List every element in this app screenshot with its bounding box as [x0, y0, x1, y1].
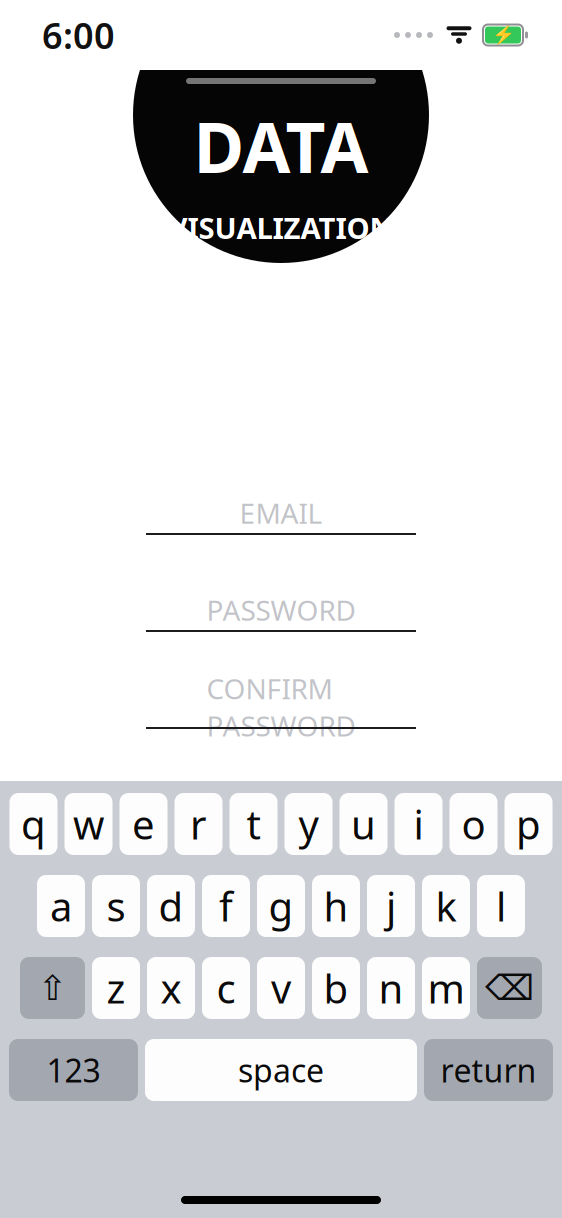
staticText: ⌫ [485, 968, 534, 1008]
button[interactable]: space [145, 1039, 417, 1101]
staticText: VISUALIZATION [168, 208, 393, 247]
button[interactable]: u [339, 793, 387, 855]
staticText: h [323, 879, 348, 932]
button[interactable]: w [64, 793, 112, 855]
staticText: ⚡ [491, 24, 514, 46]
button[interactable]: s [92, 875, 140, 937]
staticText: l [496, 879, 506, 932]
button[interactable]: b [312, 957, 360, 1019]
staticText: j [386, 879, 396, 932]
button[interactable]: n [367, 957, 415, 1019]
button[interactable]: m [422, 957, 470, 1019]
staticText: x [160, 961, 181, 1014]
button[interactable]: y [284, 793, 332, 855]
button[interactable]: v [257, 957, 305, 1019]
staticText: q [21, 797, 46, 850]
staticText: 6:00 [42, 11, 115, 59]
staticText: e [132, 797, 155, 850]
button[interactable]: d [147, 875, 195, 937]
staticText: t [246, 797, 260, 850]
button[interactable]: f [202, 875, 250, 937]
staticText: d [158, 879, 183, 932]
staticText: b [323, 961, 348, 1014]
button[interactable]: t [229, 793, 277, 855]
staticText: m [427, 961, 464, 1014]
button[interactable]: PASSWORD [0, 590, 562, 632]
staticText: f [219, 879, 233, 932]
staticText: g [268, 879, 293, 932]
staticText: i [413, 797, 423, 850]
staticText: p [516, 797, 541, 850]
staticText: ⇧ [38, 968, 67, 1008]
staticText: w [73, 797, 104, 850]
staticText: u [351, 797, 376, 850]
staticText: n [378, 961, 403, 1014]
staticText: DATA [193, 100, 368, 192]
button[interactable]: Shift [20, 957, 85, 1019]
button[interactable]: EMAIL [0, 493, 562, 535]
button[interactable]: return [424, 1039, 553, 1101]
button[interactable]: CONFIRM PASSWORD [0, 687, 562, 729]
staticText: CONFIRM PASSWORD [206, 670, 355, 744]
button[interactable]: j [367, 875, 415, 937]
button[interactable]: z [92, 957, 140, 1019]
button[interactable]: Delete [477, 957, 542, 1019]
staticText: o [461, 797, 485, 850]
staticText: return [440, 1049, 536, 1091]
button[interactable]: i [394, 793, 442, 855]
button[interactable]: r [174, 793, 222, 855]
staticText: r [190, 797, 207, 850]
button[interactable]: c [202, 957, 250, 1019]
button[interactable]: x [147, 957, 195, 1019]
staticText: s [106, 879, 125, 932]
staticText: space [238, 1049, 324, 1091]
staticText: a [50, 879, 72, 932]
button[interactable]: o [449, 793, 497, 855]
button[interactable]: g [257, 875, 305, 937]
button[interactable]: k [422, 875, 470, 937]
staticText: k [435, 879, 456, 932]
staticText: v [271, 961, 291, 1014]
button[interactable]: a [37, 875, 85, 937]
button[interactable]: l [477, 875, 525, 937]
staticText: 123 [46, 1049, 100, 1091]
staticText: z [106, 961, 125, 1014]
button[interactable]: 123 [9, 1039, 138, 1101]
button[interactable]: p [504, 793, 552, 855]
staticText: PASSWORD [206, 591, 355, 629]
staticText: EMAIL [239, 494, 322, 532]
staticText: y [298, 797, 318, 850]
button[interactable]: e [119, 793, 167, 855]
button[interactable]: h [312, 875, 360, 937]
button[interactable]: q [9, 793, 57, 855]
staticText: c [216, 961, 235, 1014]
